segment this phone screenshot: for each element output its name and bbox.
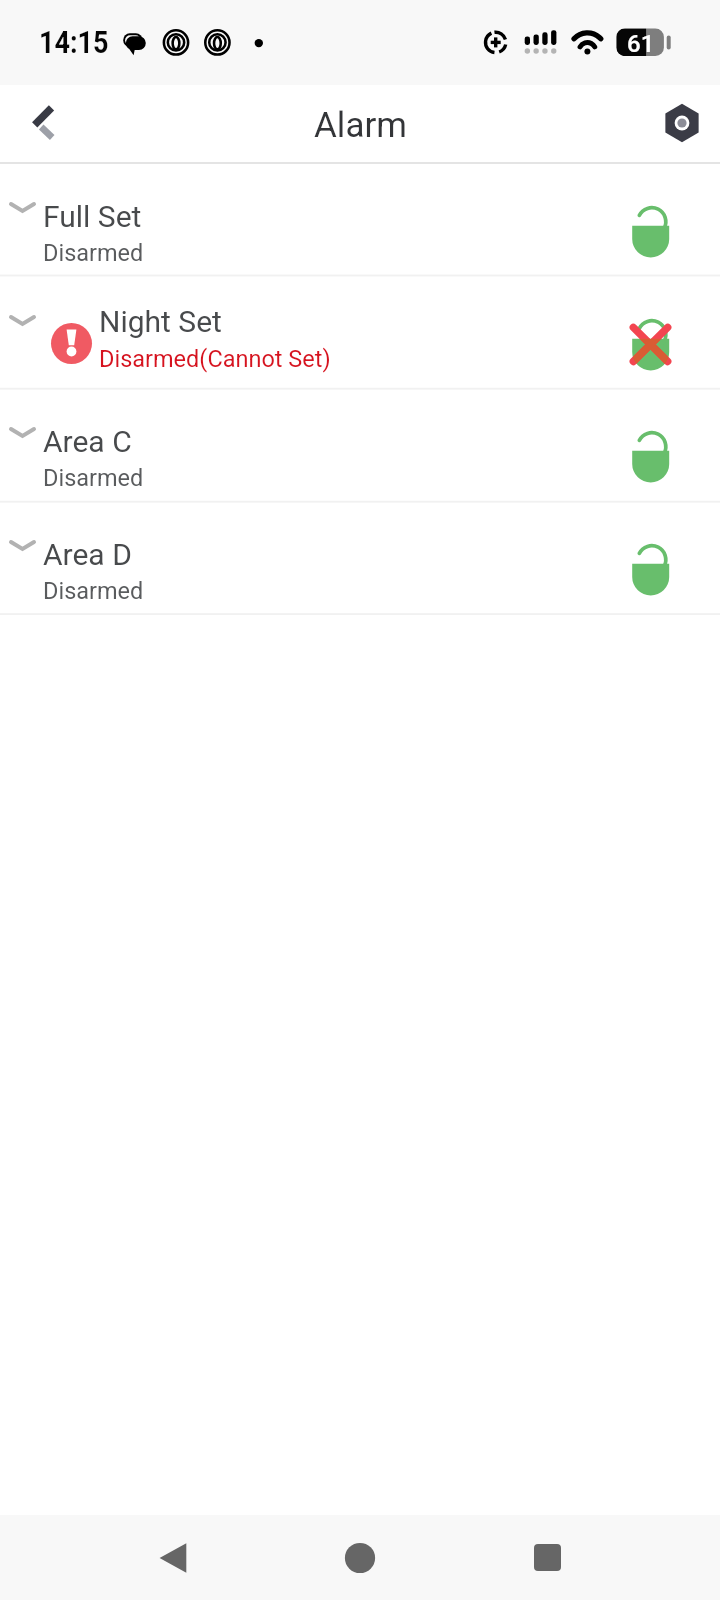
staticText: Area D bbox=[43, 537, 132, 572]
staticText: Disarmed bbox=[43, 577, 144, 605]
staticText: Night Set bbox=[99, 304, 222, 339]
button[interactable]: Recents bbox=[487, 1515, 607, 1600]
staticText: Full Set bbox=[43, 199, 142, 234]
button[interactable]: Back bbox=[113, 1515, 233, 1600]
staticText: 14:15 bbox=[39, 24, 109, 60]
staticText: 61 bbox=[627, 30, 655, 58]
button[interactable]: Home bbox=[300, 1515, 420, 1600]
staticText: Disarmed(Cannot Set) bbox=[99, 345, 331, 373]
staticText: Area C bbox=[43, 424, 132, 459]
button[interactable]: Back bbox=[0, 85, 86, 162]
button[interactable]: Area D bbox=[0, 501, 720, 612]
staticText: Alarm bbox=[314, 105, 407, 146]
button[interactable]: Night Set bbox=[0, 276, 720, 387]
staticText: Disarmed bbox=[43, 464, 144, 492]
button[interactable]: Full Set bbox=[0, 163, 720, 274]
button[interactable]: Area C bbox=[0, 388, 720, 499]
button[interactable]: Settings bbox=[634, 85, 720, 162]
staticText: Disarmed bbox=[43, 239, 144, 267]
